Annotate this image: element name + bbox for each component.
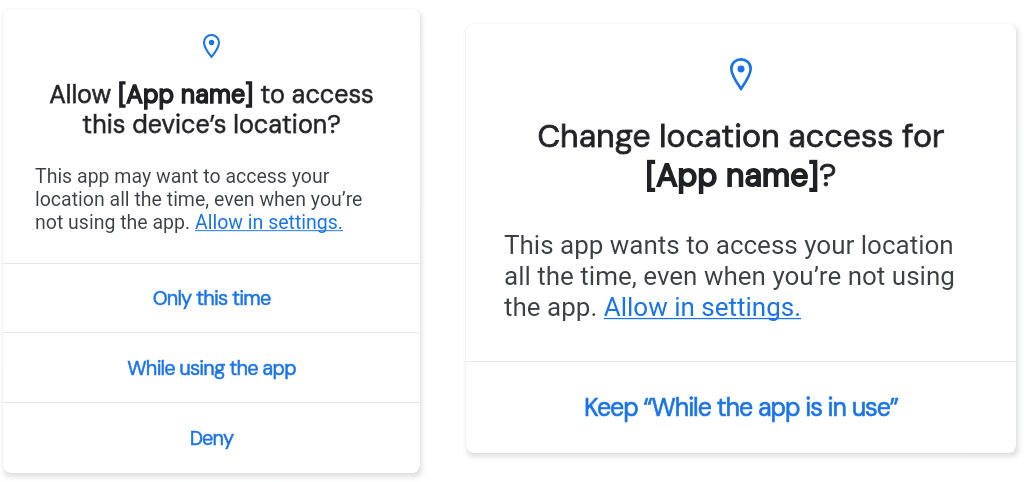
staticText: This app may want to access your locatio… [35, 165, 366, 234]
staticText: Allow [App name] to access this device’s… [43, 78, 380, 141]
button[interactable]: Only this time [3, 264, 420, 332]
staticText: Deny [3, 425, 420, 451]
staticText: Change location access for [App name]? [528, 115, 954, 196]
staticText: Keep “While the app is in use” [466, 391, 1016, 424]
button[interactable]: Keep “While the app is in use” [466, 362, 1016, 453]
staticText: Deny [3, 425, 420, 451]
staticText: While using the app [3, 355, 420, 381]
button[interactable] [604, 292, 801, 323]
staticText: Allow [App name] to access this device’s… [43, 78, 380, 141]
staticText: While using the app [3, 355, 420, 381]
staticText: Change location access for [App name]? [528, 115, 954, 196]
other: Location [203, 34, 220, 58]
other: Location [730, 58, 752, 90]
staticText: Only this time [3, 285, 420, 311]
button[interactable]: While using the app [3, 333, 420, 402]
button[interactable] [195, 211, 343, 234]
staticText: Keep “While the app is in use” [466, 391, 1016, 424]
staticText: Only this time [3, 285, 420, 311]
button[interactable]: Deny [3, 403, 420, 473]
staticText: This app wants to access your location a… [504, 230, 970, 323]
